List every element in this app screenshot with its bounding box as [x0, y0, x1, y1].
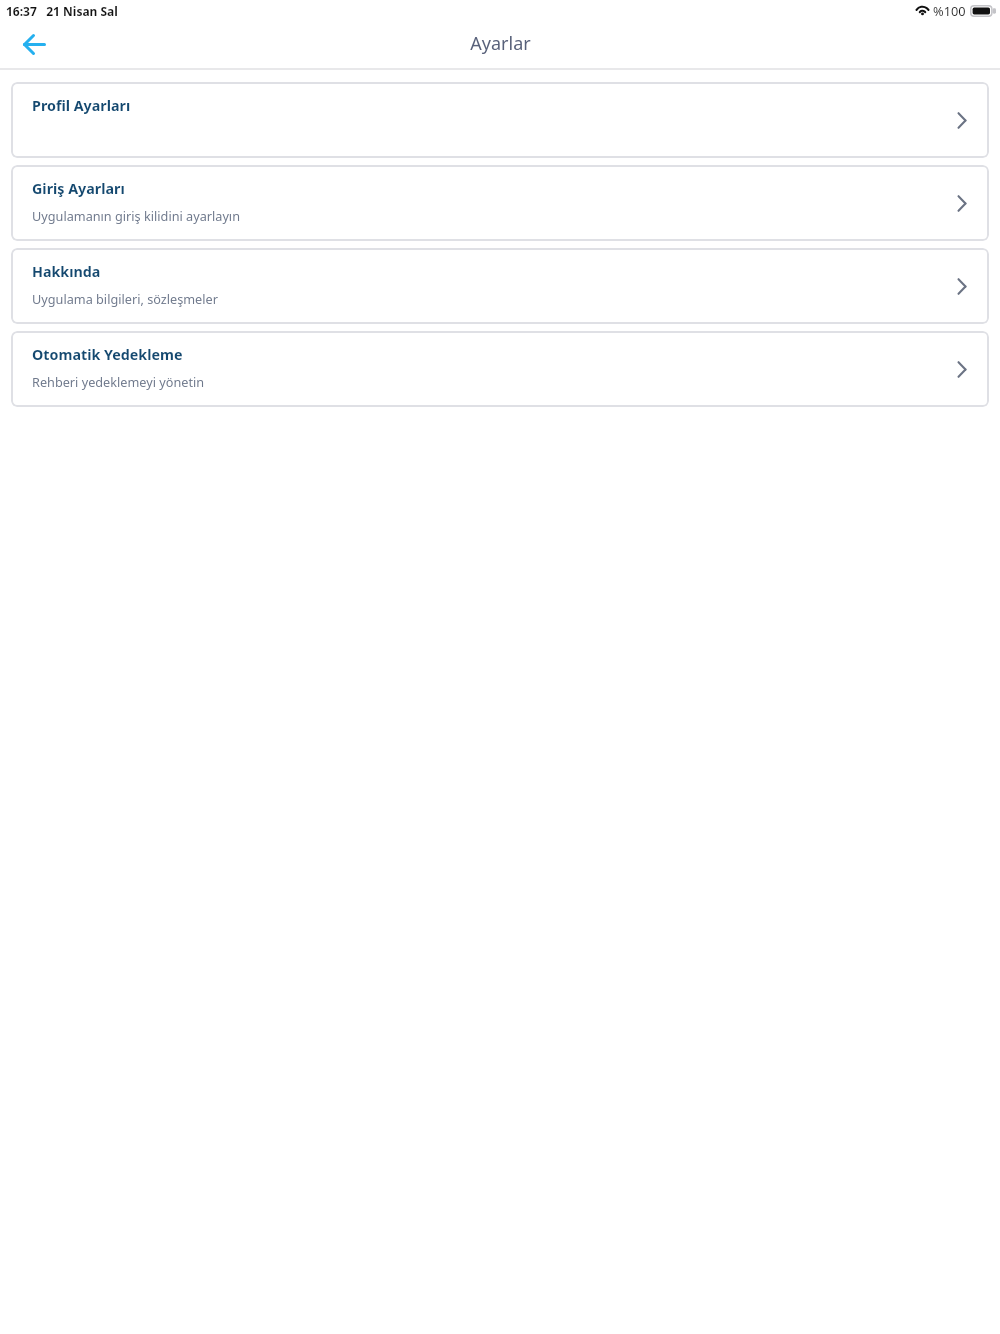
- staticText: Otomatik Yedekleme: [32, 345, 183, 364]
- button[interactable]: Back: [11, 24, 57, 64]
- staticText: Giriş Ayarları: [32, 179, 125, 198]
- button[interactable]: Hakkında: [11, 248, 989, 324]
- button[interactable]: Profil Ayarları: [11, 82, 989, 158]
- staticText: Uygulama bilgileri, sözleşmeler: [32, 290, 218, 307]
- staticText: Uygulamanın giriş kilidini ayarlayın: [32, 207, 240, 224]
- staticText: Ayarlar: [470, 31, 531, 56]
- staticText: %100: [933, 2, 966, 19]
- staticText: Rehberi yedeklemeyi yönetin: [32, 373, 205, 390]
- button[interactable]: Otomatik Yedekleme: [11, 331, 989, 407]
- button[interactable]: Giriş Ayarları: [11, 165, 989, 241]
- staticText: Hakkında: [32, 262, 101, 281]
- staticText: Profil Ayarları: [32, 96, 131, 115]
- staticText: 16:37 21 Nisan Sal: [6, 3, 118, 19]
